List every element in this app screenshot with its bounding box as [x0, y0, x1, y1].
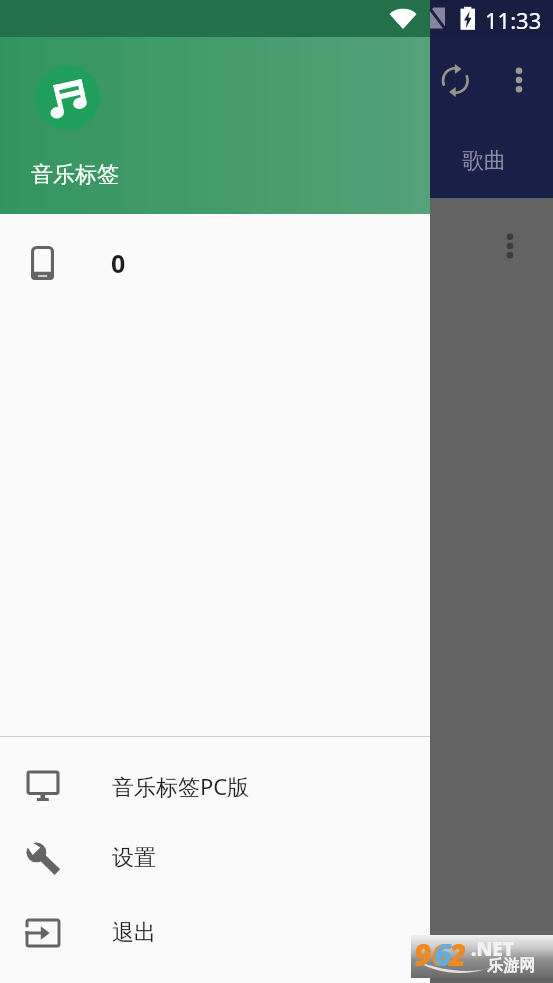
staticText: 0 [111, 246, 126, 280]
staticText: 11:33 [485, 5, 542, 35]
staticText: 退出 [112, 919, 156, 947]
button[interactable]: 0 [0, 214, 430, 312]
button[interactable]: 音乐标签 [0, 37, 430, 214]
button[interactable]: Desktop version [0, 750, 430, 822]
button[interactable]: More options [505, 66, 533, 94]
button[interactable]: Item menu [496, 232, 524, 260]
staticText: 设置 [112, 844, 156, 872]
staticText: 乐游网 [487, 956, 535, 976]
staticText: .NET [471, 936, 514, 962]
staticText: 音乐标签 [31, 161, 119, 189]
button[interactable]: Exit [0, 897, 430, 969]
staticText: 6 [434, 934, 452, 975]
button[interactable]: Settings [0, 822, 430, 894]
staticText: 歌曲 [462, 147, 506, 175]
staticText: 音乐标签PC版 [112, 771, 250, 801]
staticText: 962 [414, 934, 467, 975]
button[interactable]: Refresh [438, 60, 478, 100]
